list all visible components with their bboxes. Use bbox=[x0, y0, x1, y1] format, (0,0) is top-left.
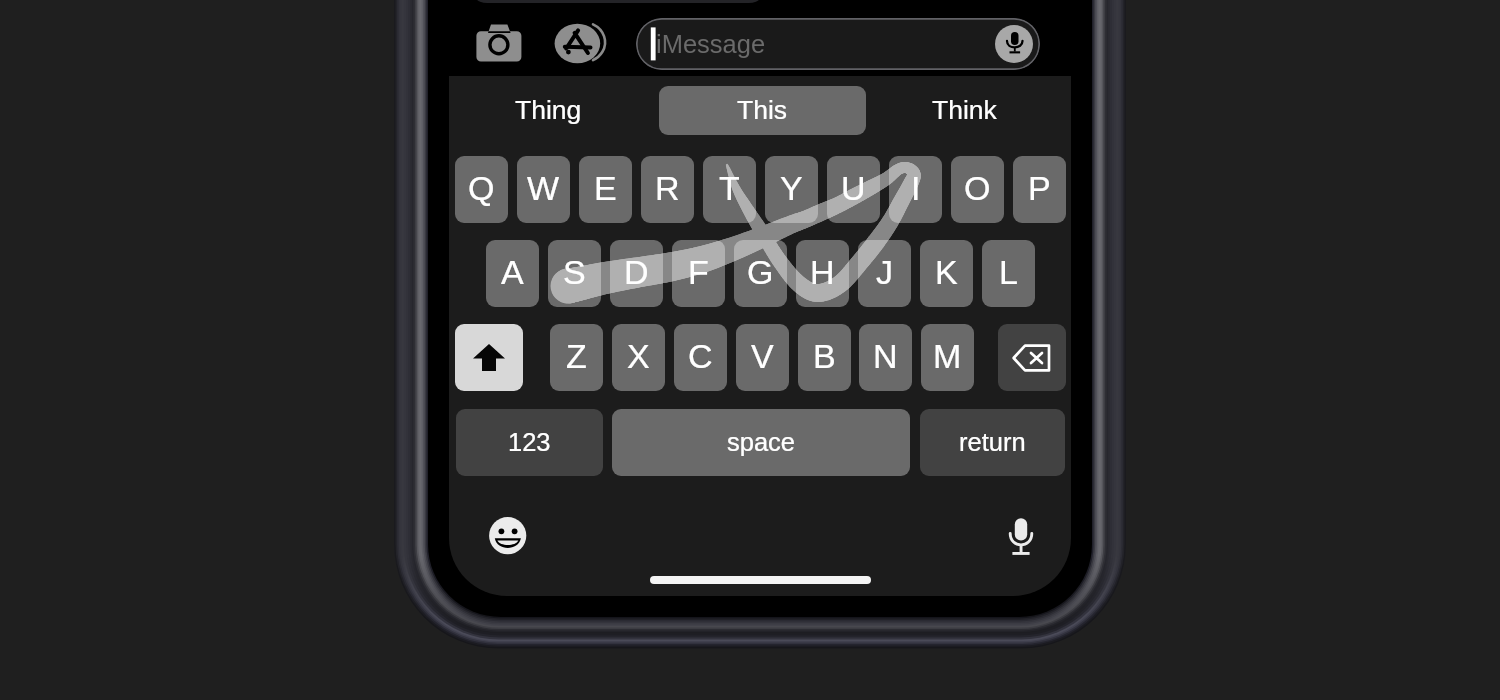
staticText: V bbox=[751, 337, 774, 375]
button[interactable]: T bbox=[703, 156, 756, 223]
staticText: A bbox=[501, 253, 524, 291]
button[interactable]: L bbox=[982, 240, 1035, 307]
button[interactable]: Z bbox=[550, 324, 603, 391]
staticText: C bbox=[688, 337, 713, 375]
button[interactable]: Camera bbox=[474, 24, 524, 64]
button[interactable]: Emoji keyboard bbox=[489, 517, 527, 555]
staticText: Z bbox=[566, 337, 587, 375]
staticText: S bbox=[563, 253, 586, 291]
button[interactable]: Q bbox=[455, 156, 508, 223]
staticText: I bbox=[911, 169, 921, 207]
button[interactable]: D bbox=[610, 240, 663, 307]
button[interactable]: J bbox=[858, 240, 911, 307]
staticText: Think bbox=[932, 95, 997, 125]
button[interactable]: space bbox=[612, 409, 910, 476]
staticText: This bbox=[737, 95, 788, 125]
button[interactable]: 123 bbox=[456, 409, 603, 476]
staticText: space bbox=[727, 428, 796, 456]
button[interactable]: X bbox=[612, 324, 665, 391]
staticText: W bbox=[527, 169, 560, 207]
staticText: return bbox=[959, 428, 1026, 456]
button[interactable]: E bbox=[579, 156, 632, 223]
staticText: M bbox=[933, 337, 962, 375]
staticText: O bbox=[964, 169, 991, 207]
staticText: 123 bbox=[508, 428, 551, 456]
staticText: B bbox=[813, 337, 836, 375]
button[interactable]: P bbox=[1013, 156, 1066, 223]
button[interactable]: S bbox=[548, 240, 601, 307]
staticText: Q bbox=[468, 169, 495, 207]
staticText: H bbox=[810, 253, 835, 291]
button[interactable]: G bbox=[734, 240, 787, 307]
button[interactable]: Dictation bbox=[1005, 516, 1037, 560]
button[interactable]: W bbox=[517, 156, 570, 223]
button[interactable]: Y bbox=[765, 156, 818, 223]
button[interactable]: N bbox=[859, 324, 912, 391]
button[interactable]: App Store bbox=[550, 20, 610, 68]
staticText: R bbox=[655, 169, 680, 207]
button[interactable]: A bbox=[486, 240, 539, 307]
staticText: K bbox=[935, 253, 958, 291]
staticText: E bbox=[594, 169, 617, 207]
staticText: U bbox=[841, 169, 866, 207]
button[interactable]: Shift bbox=[455, 324, 523, 391]
button[interactable]: Thing bbox=[445, 86, 652, 135]
button[interactable]: V bbox=[736, 324, 789, 391]
button[interactable]: H bbox=[796, 240, 849, 307]
staticText: N bbox=[873, 337, 898, 375]
button[interactable]: U bbox=[827, 156, 880, 223]
button[interactable]: K bbox=[920, 240, 973, 307]
staticText: T bbox=[719, 169, 740, 207]
button[interactable]: I bbox=[889, 156, 942, 223]
button[interactable]: iMessage bbox=[636, 18, 1040, 70]
button[interactable]: C bbox=[674, 324, 727, 391]
button[interactable]: O bbox=[951, 156, 1004, 223]
staticText: Y bbox=[780, 169, 803, 207]
staticText: X bbox=[627, 337, 650, 375]
staticText: F bbox=[688, 253, 709, 291]
staticText: Thing bbox=[515, 95, 582, 125]
staticText: D bbox=[624, 253, 649, 291]
staticText: G bbox=[747, 253, 774, 291]
staticText: iMessage bbox=[656, 30, 766, 58]
button[interactable]: Think bbox=[861, 86, 1068, 135]
button[interactable]: M bbox=[921, 324, 974, 391]
button[interactable]: Backspace bbox=[998, 324, 1066, 391]
staticText: L bbox=[999, 253, 1018, 291]
button[interactable]: return bbox=[920, 409, 1065, 476]
staticText: P bbox=[1028, 169, 1051, 207]
button[interactable]: This bbox=[659, 86, 866, 135]
button[interactable]: R bbox=[641, 156, 694, 223]
staticText: J bbox=[876, 253, 893, 291]
button[interactable]: F bbox=[672, 240, 725, 307]
button[interactable]: B bbox=[798, 324, 851, 391]
